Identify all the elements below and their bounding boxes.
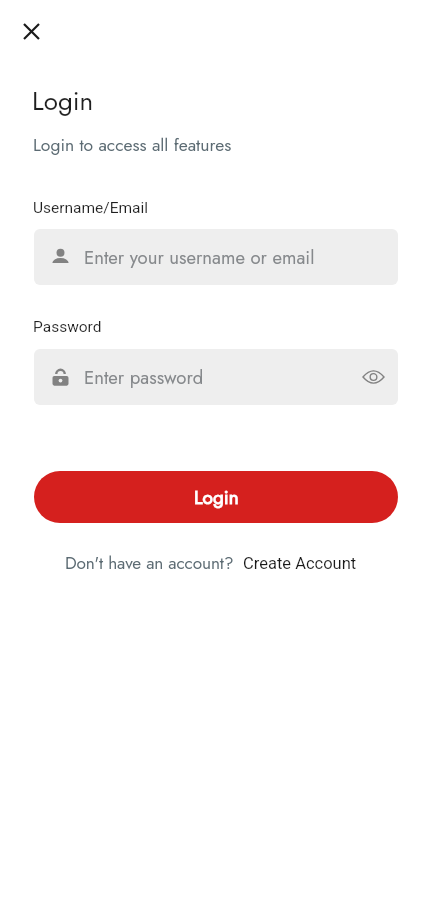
- button[interactable]: Show password: [359, 363, 387, 391]
- staticText: Create Account: [243, 554, 357, 573]
- button[interactable]: Enter your username or email: [34, 229, 398, 285]
- staticText: Enter your username or email: [84, 244, 315, 271]
- staticText: Login to access all features: [33, 132, 232, 157]
- staticText: Enter password: [84, 364, 204, 391]
- button[interactable]: Enter password: [34, 349, 398, 405]
- button[interactable]: Create Account: [243, 554, 357, 573]
- button[interactable]: Login: [34, 471, 398, 523]
- staticText: Login: [32, 82, 94, 120]
- staticText: Login: [194, 484, 239, 511]
- button[interactable]: Close: [15, 15, 47, 47]
- staticText: Username/Email: [33, 199, 149, 217]
- staticText: Password: [33, 318, 102, 336]
- staticText: Don't have an account?: [65, 551, 234, 576]
